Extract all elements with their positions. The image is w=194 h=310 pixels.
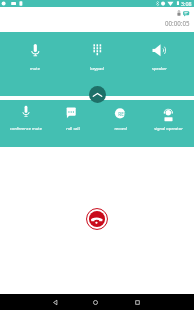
staticText: REC (118, 111, 127, 117)
staticText: 00:00:05 (165, 19, 190, 27)
staticText: record (114, 126, 127, 131)
button[interactable]: signal operator (144, 100, 192, 147)
button[interactable]: record (96, 100, 144, 147)
staticText: conference mute (10, 126, 42, 131)
button[interactable]: speaker (128, 32, 190, 97)
button[interactable]: mute (4, 32, 66, 97)
staticText: 3:08 (181, 0, 192, 7)
button[interactable]: roll call (49, 100, 96, 147)
button[interactable]: Recent apps (127, 294, 147, 310)
staticText: signal operator (154, 126, 183, 131)
button[interactable]: End call (86, 208, 108, 230)
button[interactable]: Collapse call controls (89, 86, 106, 103)
staticText: roll call (66, 126, 80, 131)
staticText: keypad (90, 66, 104, 71)
button[interactable]: keypad (66, 32, 128, 97)
staticText: speaker (152, 66, 167, 71)
button[interactable]: conference mute (2, 100, 49, 147)
button[interactable]: Home (85, 294, 105, 310)
staticText: mute (30, 66, 40, 71)
button[interactable]: Back (45, 294, 65, 310)
